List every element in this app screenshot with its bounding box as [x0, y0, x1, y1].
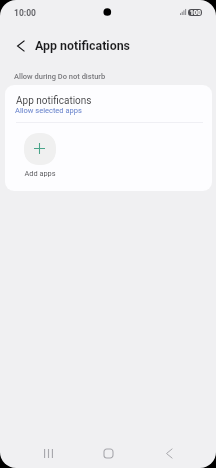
staticText: App notifications [16, 95, 92, 107]
staticText: Allow during Do not disturb [14, 72, 106, 81]
staticText: 10:00 [14, 8, 36, 18]
button[interactable]: Back [158, 443, 179, 464]
button[interactable]: Home [98, 443, 119, 464]
staticText: 100 [190, 9, 201, 16]
button[interactable]: Recent apps [38, 443, 59, 464]
staticText: App notifications [35, 38, 130, 53]
button[interactable]: Add apps [24, 133, 56, 178]
button[interactable]: Back [8, 34, 32, 58]
staticText: Allow selected apps [15, 106, 82, 115]
staticText: Add apps [24, 169, 56, 178]
